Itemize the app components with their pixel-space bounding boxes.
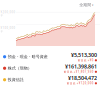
button[interactable]: 株式（現物） xyxy=(0,62,100,74)
staticText: ▾ xyxy=(92,3,93,6)
staticText: ¥100,000千 xyxy=(0,26,15,33)
staticText: 前日比 +¥120,000 xyxy=(67,81,94,85)
button[interactable]: 預金・現金・暗号資産 xyxy=(0,51,100,62)
staticText: 投資信託 xyxy=(8,77,24,82)
staticText: ¥5,513,300 xyxy=(71,51,97,58)
staticText: 前日比 +¥0 xyxy=(78,58,94,62)
staticText: ¥200,000千 xyxy=(0,10,15,17)
staticText: ¥161,398,861 xyxy=(65,63,97,70)
staticText: 株式（現物） xyxy=(8,66,32,71)
staticText: ¥18,504,472 xyxy=(68,74,97,81)
button[interactable]: 投資信託 xyxy=(0,74,100,85)
staticText: 前日比 +¥1,807,930 xyxy=(64,70,94,73)
staticText: 全期間 xyxy=(79,2,91,7)
staticText: 預金・現金・暗号資産 xyxy=(8,54,48,59)
button[interactable]: 全期間 xyxy=(77,1,95,8)
